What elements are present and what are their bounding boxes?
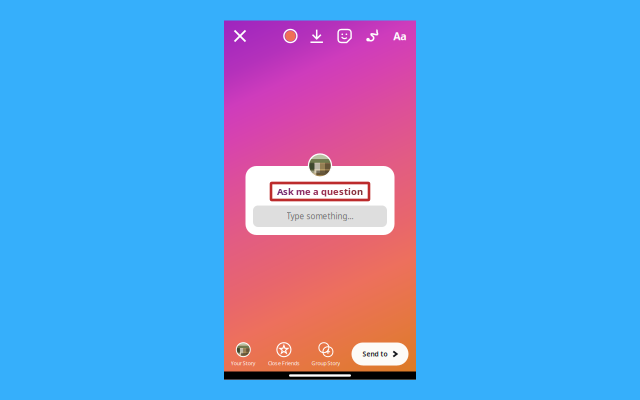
button[interactable]: Save	[306, 25, 328, 47]
staticText: Type something...	[286, 211, 353, 221]
staticText: Aa	[393, 29, 406, 43]
button[interactable]: Draw	[362, 25, 384, 47]
button[interactable]: Group Story	[306, 343, 346, 367]
staticText: Group Story	[311, 360, 340, 367]
button[interactable]: Stickers	[334, 25, 356, 47]
button[interactable]: Close Friends	[264, 343, 304, 367]
staticText: Send to	[362, 350, 387, 358]
staticText: Close Friends	[268, 360, 300, 367]
button[interactable]: Colour	[279, 25, 301, 47]
button[interactable]: Send to	[351, 342, 408, 365]
button[interactable]: Close	[229, 25, 251, 47]
button[interactable]: Your Story	[223, 343, 263, 367]
button[interactable]: Text style	[389, 25, 411, 47]
staticText: Your Story	[231, 360, 256, 367]
